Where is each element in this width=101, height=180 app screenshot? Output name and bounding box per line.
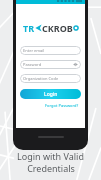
staticText: CKROB bbox=[42, 22, 73, 34]
button[interactable]: Forgot Password? bbox=[44, 102, 80, 109]
button[interactable]: Login bbox=[20, 89, 81, 99]
staticText: TR bbox=[23, 22, 35, 34]
staticText: Login with Valid bbox=[17, 150, 84, 162]
button[interactable]: Enter email bbox=[20, 46, 81, 55]
staticText: Forgot Password? bbox=[45, 103, 79, 108]
button[interactable]: Password bbox=[20, 60, 81, 69]
staticText: Enter email bbox=[23, 48, 78, 53]
staticText: Password bbox=[23, 62, 73, 67]
other: Show password bbox=[73, 62, 78, 67]
button[interactable]: Organization Code bbox=[20, 74, 81, 83]
staticText: Organization Code bbox=[23, 76, 78, 81]
staticText: Login bbox=[44, 91, 58, 98]
staticText: Credentials bbox=[27, 162, 75, 174]
